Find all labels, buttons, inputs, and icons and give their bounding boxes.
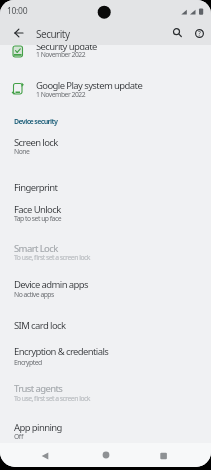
- staticText: Encryption & credentials: [14, 345, 109, 358]
- button[interactable]: [0, 378, 211, 417]
- button[interactable]: [0, 132, 211, 177]
- staticText: Screen lock: [14, 136, 58, 149]
- staticText: 1 November 2022: [36, 50, 86, 59]
- staticText: None: [14, 147, 30, 156]
- staticText: To use, first set a screen lock: [14, 253, 90, 262]
- button[interactable]: [0, 274, 211, 315]
- button[interactable]: [0, 45, 211, 70]
- staticText: SIM card lock: [14, 319, 66, 332]
- staticText: App pinning: [14, 421, 62, 434]
- button[interactable]: [0, 341, 211, 378]
- staticText: Fingerprint: [14, 181, 58, 194]
- button[interactable]: [189, 23, 209, 43]
- staticText: 1 November 2022: [36, 90, 86, 99]
- button[interactable]: [0, 315, 211, 341]
- button[interactable]: [8, 24, 28, 44]
- staticText: Device security: [14, 117, 58, 127]
- staticText: ?: [198, 29, 201, 38]
- staticText: To use, first set a screen lock: [14, 394, 90, 403]
- staticText: Face Unlock: [14, 203, 61, 216]
- staticText: Encrypted: [14, 358, 42, 367]
- staticText: Google Play system update: [36, 79, 143, 92]
- staticText: Security: [36, 27, 70, 41]
- staticText: Off: [14, 432, 23, 441]
- staticText: 10:00: [7, 5, 28, 17]
- staticText: Device admin apps: [14, 278, 88, 291]
- button[interactable]: [0, 177, 211, 199]
- staticText: Security update: [36, 40, 97, 53]
- button[interactable]: [153, 446, 173, 466]
- button[interactable]: [0, 417, 211, 443]
- button[interactable]: [35, 446, 55, 466]
- button[interactable]: [167, 23, 187, 43]
- staticText: Tap to set up face: [14, 214, 62, 223]
- button[interactable]: [96, 445, 116, 465]
- button[interactable]: [0, 70, 211, 110]
- button[interactable]: [0, 199, 211, 238]
- staticText: Smart Lock: [14, 242, 58, 255]
- staticText: Trust agents: [14, 382, 63, 395]
- button[interactable]: [0, 238, 211, 274]
- staticText: No active apps: [14, 290, 54, 299]
